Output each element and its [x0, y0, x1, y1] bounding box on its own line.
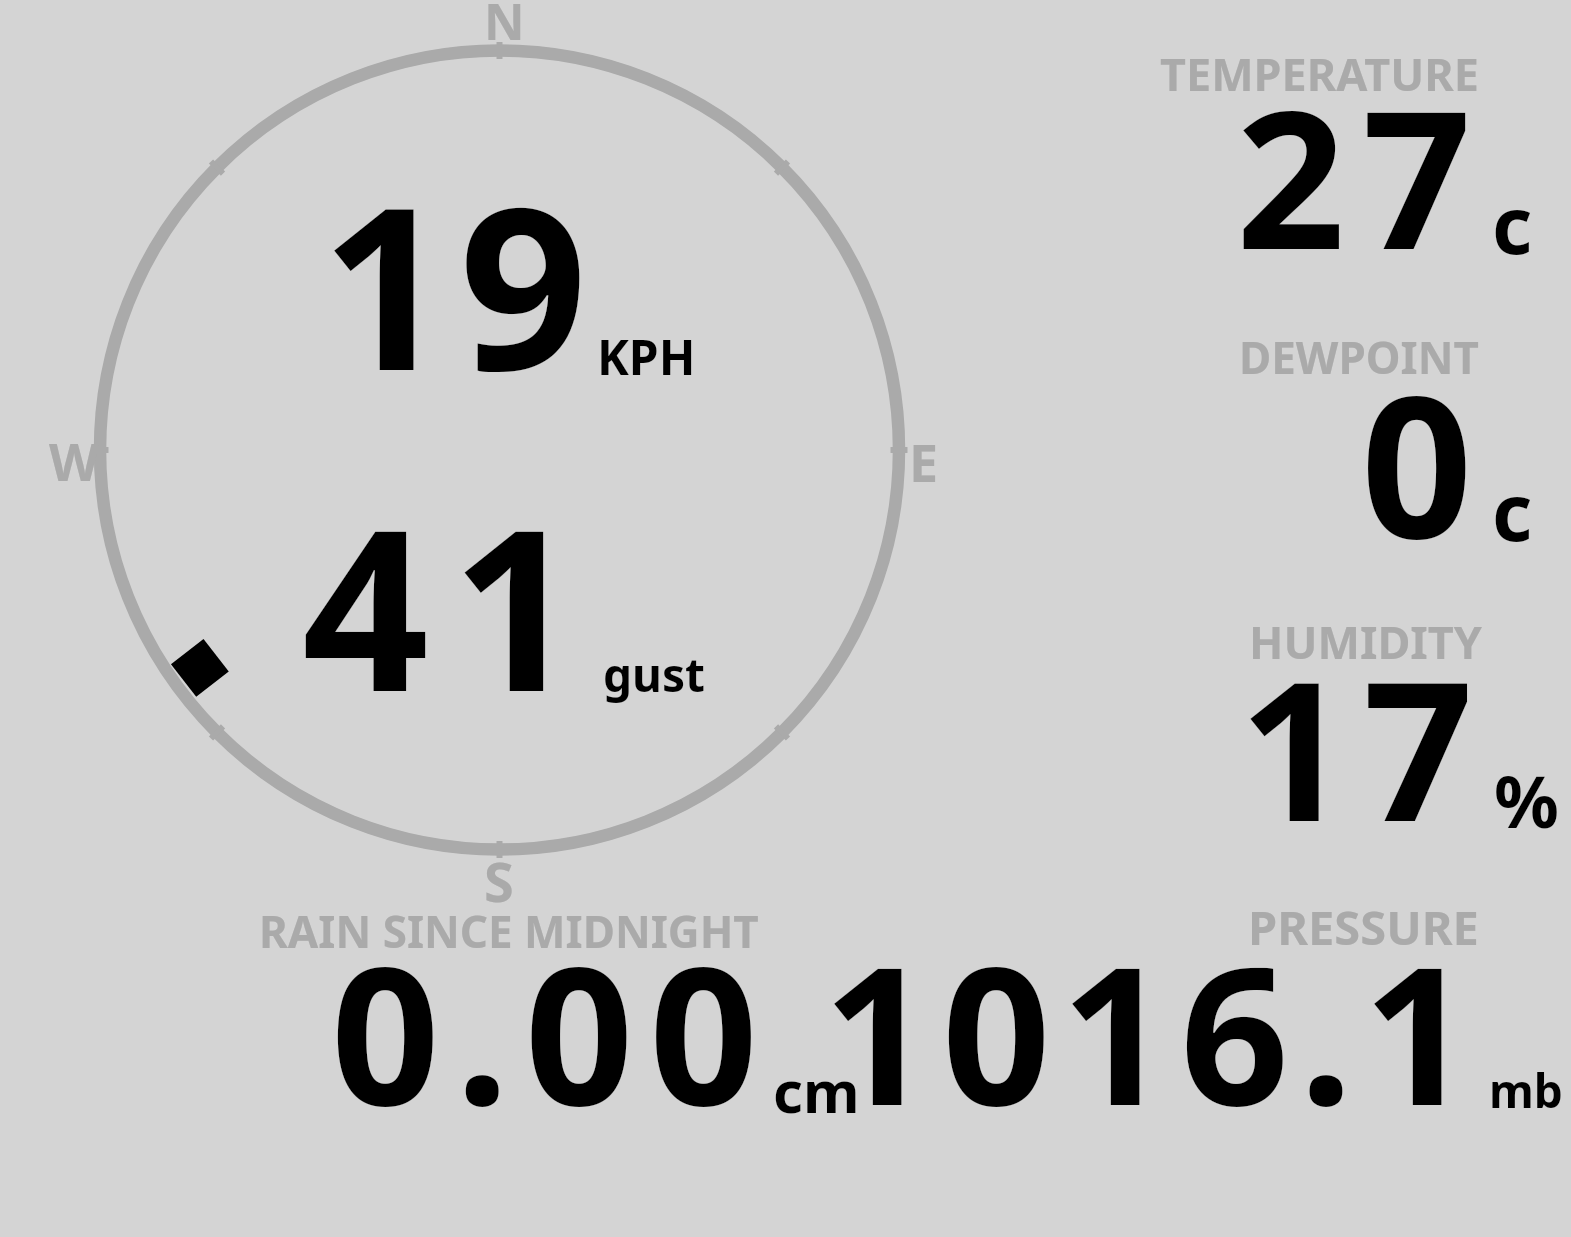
- staticText: 19: [321, 131, 598, 436]
- staticText: 27: [1236, 45, 1489, 255]
- staticText: S: [484, 844, 514, 918]
- button[interactable]: Dewpoint 0 degrees Celsius: [1140, 335, 1571, 545]
- staticText: mb: [1489, 1059, 1563, 1122]
- button[interactable]: Rain since midnight 0.00 centimetres: [250, 905, 845, 1120]
- staticText: HUMIDITY: [1249, 611, 1482, 672]
- button[interactable]: Pressure 1016.1 millibars: [845, 905, 1571, 1120]
- staticText: PRESSURE: [1248, 895, 1479, 959]
- button[interactable]: Humidity 17 percent: [1140, 620, 1571, 830]
- staticText: 0.00: [331, 902, 774, 1117]
- staticText: KPH: [597, 324, 696, 389]
- staticText: 1016.1: [823, 902, 1483, 1117]
- staticText: c: [1492, 171, 1533, 277]
- button[interactable]: Wind 19 KPH, gusting 41: [80, 0, 940, 890]
- staticText: c: [1492, 458, 1533, 564]
- staticText: N: [484, 0, 525, 55]
- staticText: gust: [603, 643, 706, 706]
- staticText: 0: [1361, 330, 1482, 540]
- staticText: 17: [1239, 615, 1487, 825]
- staticText: cm: [773, 1051, 860, 1130]
- staticText: RAIN SINCE MIDNIGHT: [259, 901, 759, 961]
- staticText: 41: [302, 454, 601, 756]
- staticText: TEMPERATURE: [1160, 43, 1479, 104]
- staticText: %: [1494, 751, 1559, 849]
- staticText: E: [909, 426, 939, 497]
- staticText: DEWPOINT: [1239, 327, 1479, 387]
- button[interactable]: Temperature 27 degrees Celsius: [1140, 50, 1571, 260]
- staticText: W: [49, 425, 100, 496]
